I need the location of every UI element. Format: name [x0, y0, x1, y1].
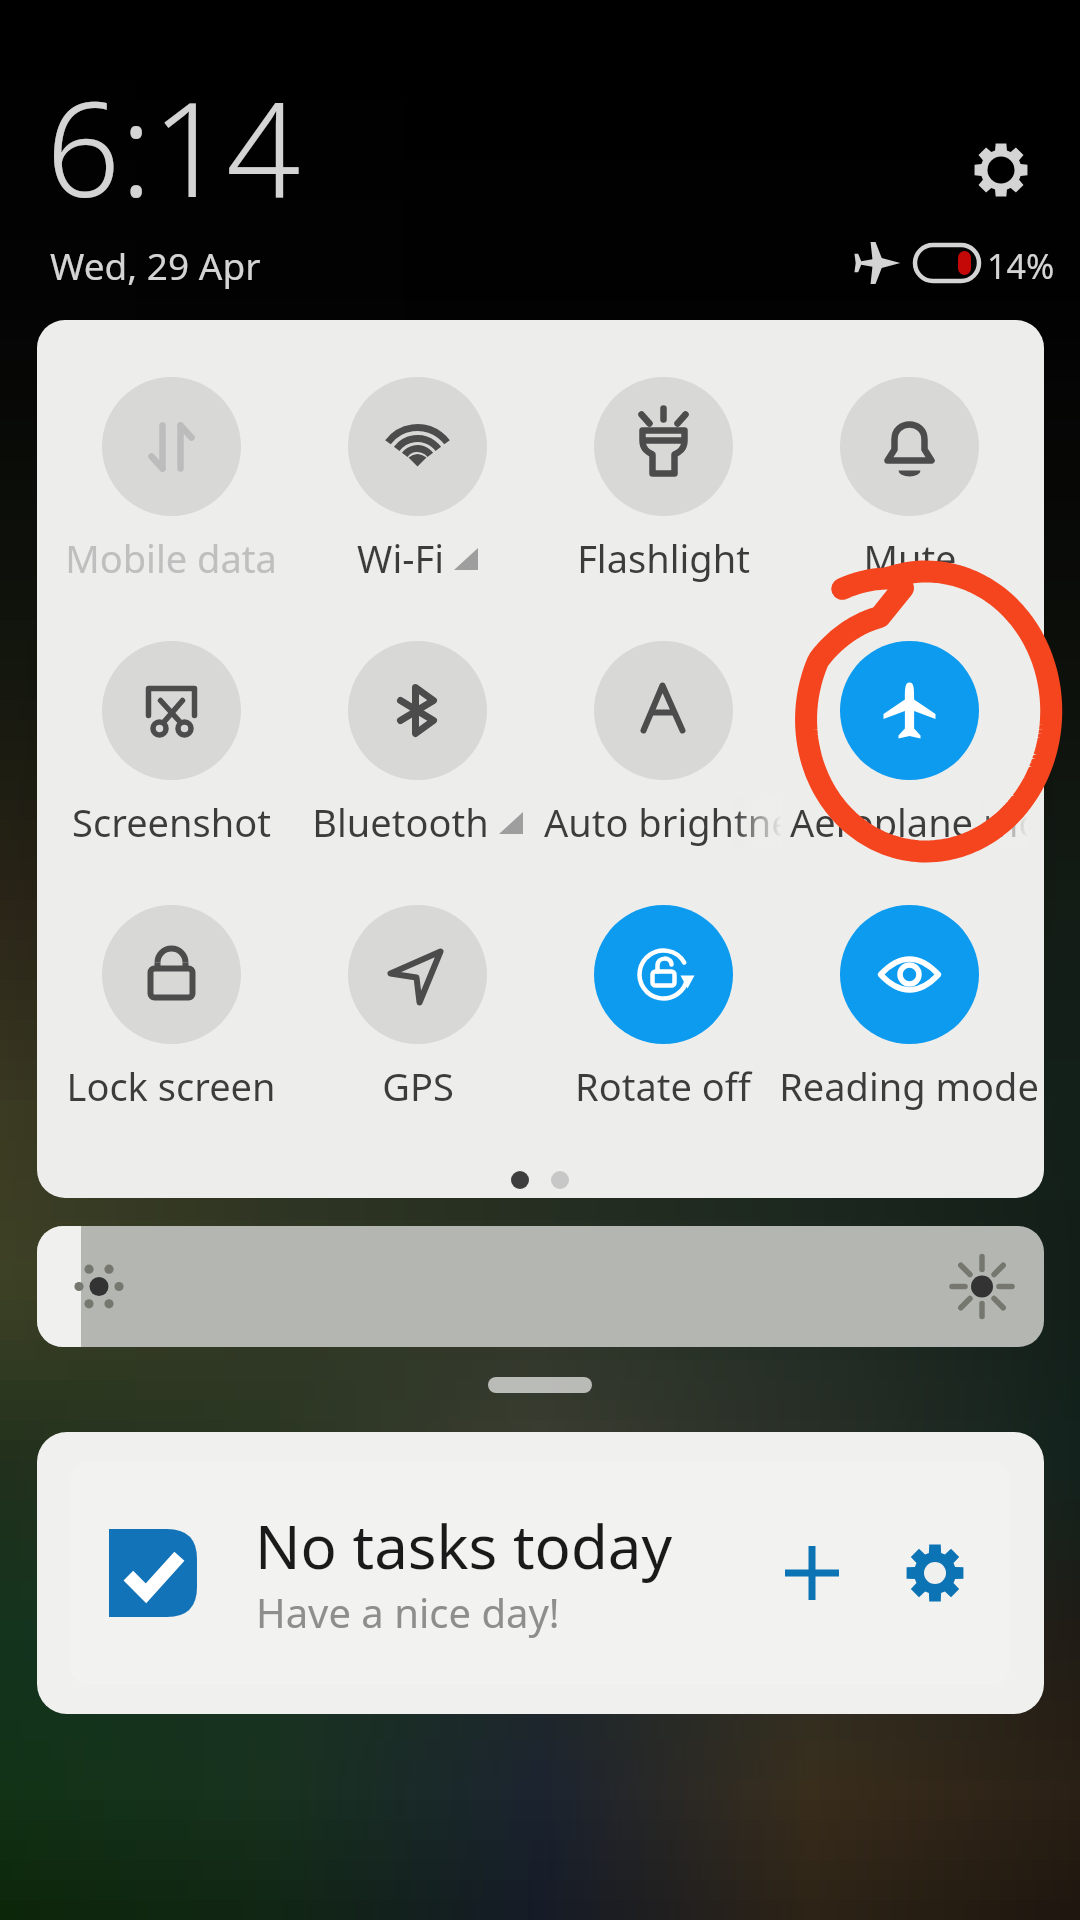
- button[interactable]: Auto brightness: [540, 621, 786, 853]
- staticText: GPS: [382, 1060, 454, 1112]
- staticText: Lock screen: [66, 1060, 276, 1112]
- staticText: Auto brightness: [544, 796, 782, 848]
- button[interactable]: No tasks today: [37, 1432, 1044, 1714]
- button[interactable]: Reading mode: [786, 885, 1032, 1117]
- button[interactable]: Screenshot: [48, 621, 294, 853]
- staticText: Wi-Fi: [357, 532, 444, 584]
- staticText: Mute: [863, 532, 957, 584]
- staticText: No tasks today: [255, 1505, 673, 1587]
- staticText: Mobile data: [65, 532, 277, 584]
- staticText: 14%: [987, 243, 1055, 289]
- button[interactable]: Lock screen: [48, 885, 294, 1117]
- button[interactable]: Brightness: [37, 1226, 1044, 1347]
- staticText: Wed, 29 Apr: [50, 240, 261, 290]
- staticText: Bluetooth: [312, 796, 489, 848]
- button[interactable]: Wi-Fi: [294, 357, 540, 589]
- staticText: Flashlight: [577, 532, 750, 584]
- staticText: Have a nice day!: [256, 1585, 560, 1639]
- button[interactable]: Notification settings: [895, 1533, 975, 1613]
- button[interactable]: Mobile data: [48, 357, 294, 589]
- button[interactable]: Settings: [959, 128, 1043, 212]
- staticText: 6:14: [46, 58, 301, 235]
- button[interactable]: Aeroplane mode: [786, 621, 1032, 853]
- button[interactable]: GPS: [294, 885, 540, 1117]
- staticText: Aeroplane mode: [790, 796, 1028, 848]
- staticText: Rotate off: [575, 1060, 751, 1112]
- button[interactable]: Mute: [786, 357, 1032, 589]
- button[interactable]: Rotate off: [540, 885, 786, 1117]
- button[interactable]: Add task: [772, 1533, 852, 1613]
- staticText: Screenshot: [72, 796, 271, 848]
- staticText: Reading mode: [779, 1060, 1039, 1112]
- button[interactable]: Flashlight: [540, 357, 786, 589]
- button[interactable]: Expand panel: [488, 1377, 592, 1393]
- button[interactable]: Bluetooth: [294, 621, 540, 853]
